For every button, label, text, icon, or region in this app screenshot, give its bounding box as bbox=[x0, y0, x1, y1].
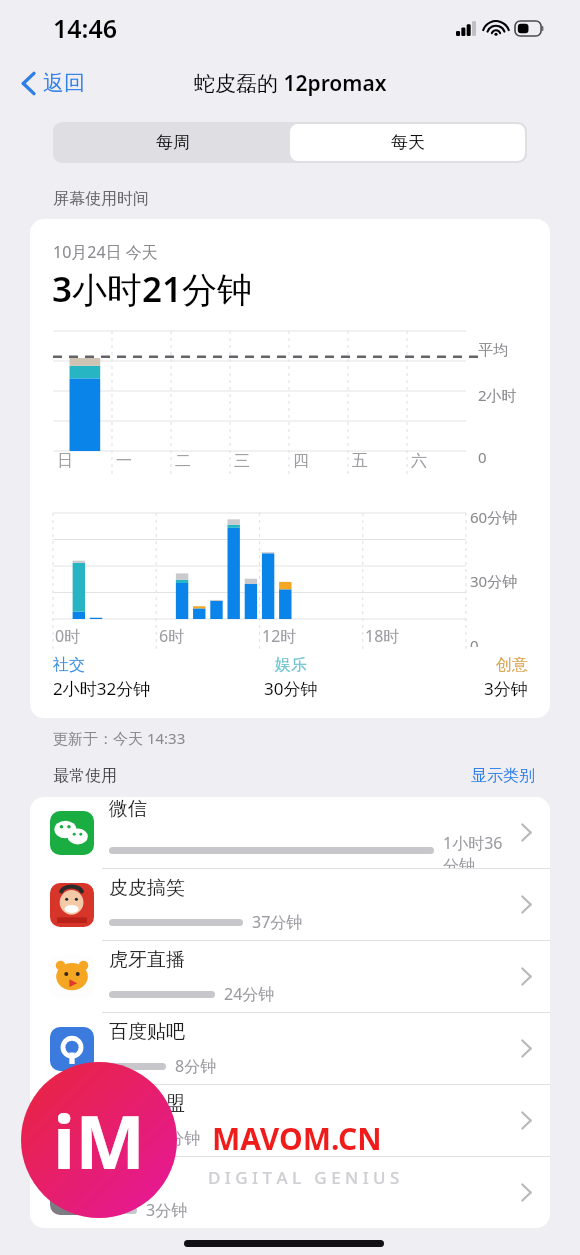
staticText: 五 bbox=[352, 451, 368, 471]
other: 打开 微信 详情 bbox=[521, 823, 532, 842]
staticText: 百度贴吧 bbox=[109, 1020, 185, 1044]
staticText: 30分钟 bbox=[470, 571, 518, 591]
staticText: 12时 bbox=[262, 625, 297, 647]
staticText: 平均 bbox=[478, 341, 508, 360]
staticText: 皮皮搞笑 bbox=[109, 876, 185, 900]
other: 打开 皮皮搞笑 详情 bbox=[521, 895, 532, 914]
staticText: 四 bbox=[293, 451, 309, 471]
staticText: 一 bbox=[116, 451, 132, 471]
staticText: 显示类别 bbox=[471, 766, 535, 786]
staticText: 创意 bbox=[496, 655, 528, 675]
button[interactable]: 英雄联盟 bbox=[30, 1084, 550, 1156]
button[interactable]: 虎牙直播 bbox=[30, 940, 550, 1012]
staticText: 6时 bbox=[159, 625, 185, 647]
button[interactable]: 显示类别 bbox=[471, 766, 535, 786]
staticText: iM bbox=[53, 1090, 145, 1191]
staticText: D I G I T A L G E N I U S bbox=[208, 1166, 400, 1189]
staticText: 1小时36分钟 bbox=[443, 832, 515, 868]
staticText: 0 bbox=[470, 635, 479, 647]
staticText: 24分钟 bbox=[224, 983, 275, 1005]
staticText: MAVOM.CN bbox=[212, 1118, 382, 1159]
staticText: 3分钟 bbox=[146, 1199, 188, 1221]
staticText: 0 bbox=[478, 447, 487, 467]
other: 打开 相机 详情 bbox=[521, 1183, 532, 1202]
staticText: 0时 bbox=[55, 625, 81, 647]
staticText: 社交 bbox=[53, 655, 85, 675]
other: 打开 英雄联盟 详情 bbox=[521, 1111, 532, 1130]
staticText: 14:46 bbox=[53, 11, 118, 45]
staticText: 8分钟 bbox=[175, 1055, 217, 1077]
staticText: 屏幕使用时间 bbox=[53, 189, 149, 209]
staticText: 日 bbox=[57, 451, 73, 471]
button[interactable]: 皮皮搞笑 bbox=[30, 868, 550, 940]
other: 打开 百度贴吧 详情 bbox=[521, 1039, 532, 1058]
staticText: 2小时32分钟 bbox=[53, 677, 151, 700]
button[interactable]: 每周 bbox=[55, 124, 290, 161]
staticText: 六 bbox=[411, 451, 427, 471]
staticText: 18时 bbox=[365, 625, 400, 647]
staticText: 相机 bbox=[109, 1164, 147, 1188]
staticText: 更新于：今天 14:33 bbox=[53, 728, 186, 748]
staticText: 娱乐 bbox=[275, 655, 307, 675]
staticText: 30分钟 bbox=[264, 677, 318, 700]
other: 打开 虎牙直播 详情 bbox=[521, 967, 532, 986]
staticText: 蛇皮磊的 12promax bbox=[194, 69, 387, 98]
staticText: 三 bbox=[234, 451, 250, 471]
staticText: 每天 bbox=[391, 132, 425, 153]
staticText: 二 bbox=[175, 451, 191, 471]
button[interactable]: 百度贴吧 bbox=[30, 1012, 550, 1084]
staticText: 最常使用 bbox=[53, 766, 117, 786]
staticText: 37分钟 bbox=[252, 911, 303, 933]
staticText: 2小时 bbox=[478, 385, 517, 405]
staticText: 3分钟 bbox=[484, 677, 528, 700]
staticText: 英雄联盟 bbox=[109, 1092, 185, 1116]
button[interactable]: 微信 bbox=[30, 797, 550, 868]
staticText: 5分钟 bbox=[159, 1127, 201, 1149]
staticText: 60分钟 bbox=[470, 507, 518, 527]
button[interactable]: 每天 bbox=[290, 124, 525, 161]
staticText: 返回 bbox=[43, 70, 85, 96]
staticText: 每周 bbox=[156, 132, 190, 153]
button[interactable]: 相机 bbox=[30, 1156, 550, 1228]
staticText: 3小时21分钟 bbox=[52, 265, 253, 313]
staticText: 虎牙直播 bbox=[109, 948, 185, 972]
staticText: 微信 bbox=[109, 797, 147, 821]
button[interactable]: 返回 bbox=[18, 64, 89, 102]
staticText: 10月24日 今天 bbox=[53, 241, 158, 263]
